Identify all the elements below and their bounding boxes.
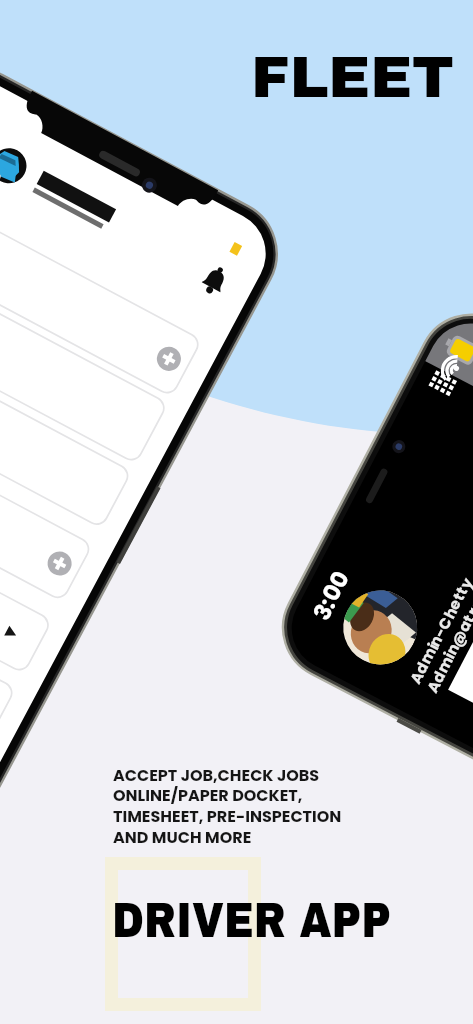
staticText: FLEET <box>251 46 455 109</box>
staticText: ACCEPT JOB,CHECK JOBS ONLINE/PAPER DOCKE… <box>113 764 342 849</box>
staticText: DRIVER APP <box>112 893 391 947</box>
